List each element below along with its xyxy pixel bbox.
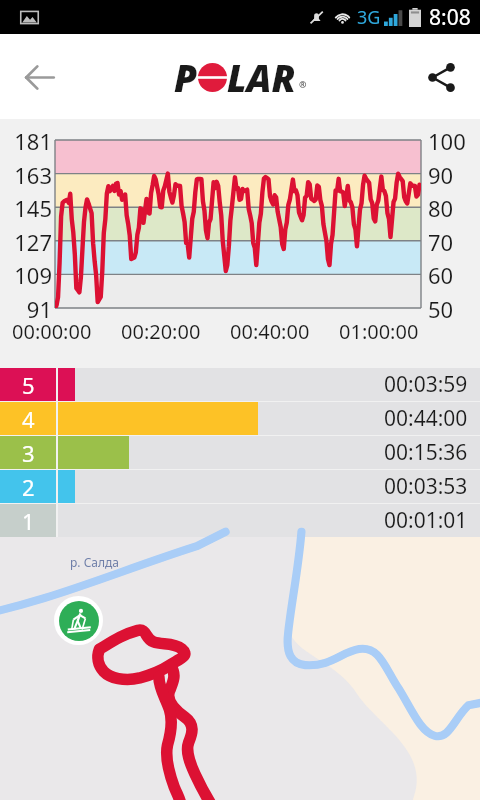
button[interactable]: 1 bbox=[0, 504, 480, 537]
staticText: 4 bbox=[22, 404, 35, 434]
staticText: 3G bbox=[357, 5, 381, 30]
staticText: 00:01:01 bbox=[384, 506, 468, 535]
staticText: 163 bbox=[2, 160, 52, 190]
staticText: 100 bbox=[428, 126, 478, 156]
button[interactable]: Route map bbox=[0, 537, 480, 800]
staticText: 00:00:00 bbox=[12, 318, 92, 345]
staticText: 00:44:00 bbox=[384, 404, 468, 433]
staticText: 00:03:53 bbox=[384, 472, 468, 501]
staticText: р. Салда bbox=[70, 554, 119, 570]
button[interactable]: 4 bbox=[0, 402, 480, 435]
button[interactable]: Share bbox=[414, 50, 468, 104]
staticText: 50 bbox=[428, 294, 478, 324]
staticText: 80 bbox=[428, 193, 478, 223]
staticText: 60 bbox=[428, 260, 478, 290]
staticText: 00:20:00 bbox=[121, 318, 201, 345]
staticText: 90 bbox=[428, 160, 478, 190]
staticText: 70 bbox=[428, 227, 478, 257]
staticText: ® bbox=[299, 78, 307, 90]
button[interactable]: 3 bbox=[0, 436, 480, 469]
staticText: 109 bbox=[2, 260, 52, 290]
staticText: 1 bbox=[22, 506, 35, 536]
staticText: 01:00:00 bbox=[339, 318, 419, 345]
button[interactable]: Start location bbox=[54, 596, 103, 645]
button[interactable]: 2 bbox=[0, 470, 480, 503]
staticText: 3 bbox=[22, 438, 35, 468]
button[interactable]: 5 bbox=[0, 368, 480, 401]
staticText: 00:03:59 bbox=[384, 370, 468, 399]
staticText: 5 bbox=[22, 370, 35, 400]
staticText: 127 bbox=[2, 227, 52, 257]
staticText: 8:08 bbox=[429, 3, 471, 32]
staticText: 181 bbox=[2, 126, 52, 156]
staticText: 00:40:00 bbox=[230, 318, 310, 345]
staticText: 145 bbox=[2, 193, 52, 223]
staticText: 91 bbox=[2, 294, 52, 324]
staticText: LAR bbox=[227, 52, 296, 102]
button[interactable]: Back bbox=[12, 50, 66, 104]
staticText: 00:15:36 bbox=[384, 438, 468, 467]
staticText: 2 bbox=[22, 472, 35, 502]
staticText: P bbox=[174, 52, 198, 102]
